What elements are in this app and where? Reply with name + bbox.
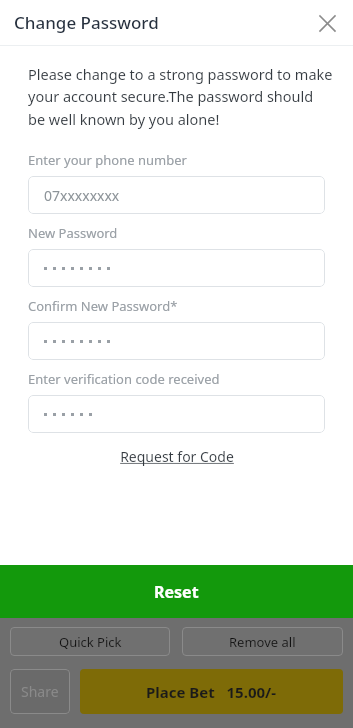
staticText: Please change to a strong password to ma… — [28, 64, 333, 129]
button[interactable]: Request for Code — [116, 445, 238, 468]
button[interactable]: Share — [10, 669, 70, 714]
staticText: Quick Pick — [59, 633, 122, 651]
button[interactable]: Quick Pick — [10, 627, 170, 656]
button[interactable]: Remove all — [182, 627, 343, 656]
staticText: Confirm New Password* — [28, 297, 178, 315]
staticText: Enter verification code received — [28, 370, 220, 388]
button[interactable] — [28, 249, 325, 287]
staticText: Change Password — [14, 11, 159, 34]
button[interactable] — [28, 395, 325, 433]
staticText: Place Bet 15.00/- — [146, 682, 277, 702]
staticText: Enter your phone number — [28, 151, 187, 169]
staticText: 07xxxxxxxx — [44, 186, 120, 205]
staticText: Share — [21, 682, 59, 701]
staticText: Reset — [154, 581, 199, 603]
button[interactable]: Place Bet 15.00/- — [80, 669, 343, 714]
button[interactable]: 07xxxxxxxx — [28, 176, 325, 214]
button[interactable]: Close — [311, 7, 343, 39]
button[interactable] — [28, 322, 325, 360]
staticText: Remove all — [229, 633, 296, 651]
staticText: New Password — [28, 224, 118, 242]
button[interactable]: Reset — [0, 565, 353, 618]
